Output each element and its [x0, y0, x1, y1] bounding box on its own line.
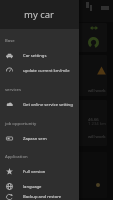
staticText: job opportunity [5, 121, 37, 127]
staticText: 46.66 [88, 117, 99, 123]
staticText: Application [5, 154, 28, 160]
button[interactable]: Car settings [0, 48, 79, 63]
staticText: 1 234 km [88, 121, 106, 127]
staticText: update current km/mile [23, 68, 70, 74]
button[interactable]: Backup and restore [0, 194, 79, 200]
staticText: will work [88, 134, 106, 140]
staticText: Car settings [23, 53, 47, 59]
staticText: language [23, 184, 42, 190]
staticText: Full version [23, 169, 46, 175]
staticText: Backup and restore [23, 194, 62, 200]
button[interactable]: Full version [0, 164, 79, 179]
staticText: Zapasn sem [23, 136, 47, 142]
button[interactable]: Zapasn sem [0, 131, 79, 146]
staticText: Get online service setting [23, 102, 73, 108]
staticText: Base [5, 38, 15, 44]
button[interactable]: language [0, 179, 79, 194]
button[interactable]: Get online service setting [0, 97, 79, 112]
staticText: my car [24, 8, 55, 21]
button[interactable]: update current km/mile [0, 63, 79, 78]
staticText: services [5, 87, 22, 93]
staticText: will work [88, 88, 106, 94]
button[interactable]: my car [0, 0, 79, 29]
